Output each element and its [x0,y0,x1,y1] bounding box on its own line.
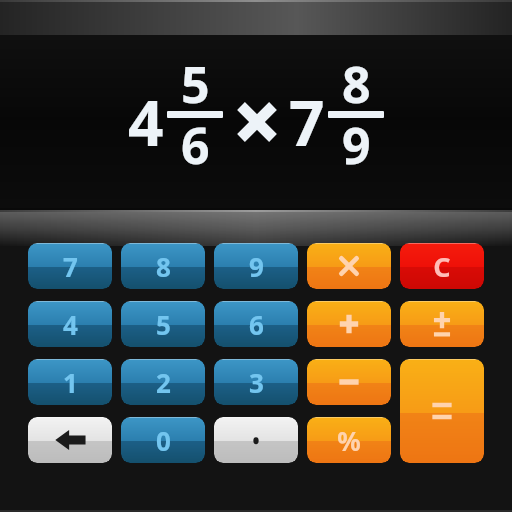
button[interactable]: 2 [121,359,205,405]
button[interactable]: 9 [214,243,298,289]
staticText: 4 [63,307,78,342]
button[interactable]: Multiply [307,243,391,289]
button[interactable]: 8 [121,243,205,289]
button[interactable]: Subtract [307,359,391,405]
staticText: 1 [63,365,78,400]
button[interactable]: 7 [28,243,112,289]
button[interactable]: 0 [121,417,205,463]
staticText: 6 [249,307,264,342]
staticText: 5 [156,307,171,342]
staticText: 5 [181,50,210,118]
staticText: 4 [128,80,164,164]
button[interactable]: 6 [214,301,298,347]
staticText: C [433,248,451,285]
staticText: 7 [63,249,78,284]
staticText: 3 [249,365,264,400]
button[interactable]: Plus minus sign [400,301,484,347]
staticText: % [337,423,361,458]
staticText: 0 [156,423,171,458]
button[interactable]: % [307,417,391,463]
staticText: 7 [289,80,325,164]
staticText: 9 [249,249,264,284]
button[interactable]: Equals [400,359,484,463]
staticText: 6 [181,111,210,179]
staticText: 9 [342,111,371,179]
button[interactable]: Add [307,301,391,347]
staticText: 8 [342,50,371,118]
staticText: 2 [156,365,171,400]
staticText: 8 [156,249,171,284]
button[interactable]: 4 [28,301,112,347]
button[interactable]: 5 [121,301,205,347]
button[interactable]: Decimal point [214,417,298,463]
button[interactable]: 1 [28,359,112,405]
button[interactable]: Backspace [28,417,112,463]
button[interactable]: 3 [214,359,298,405]
button[interactable]: C [400,243,484,289]
